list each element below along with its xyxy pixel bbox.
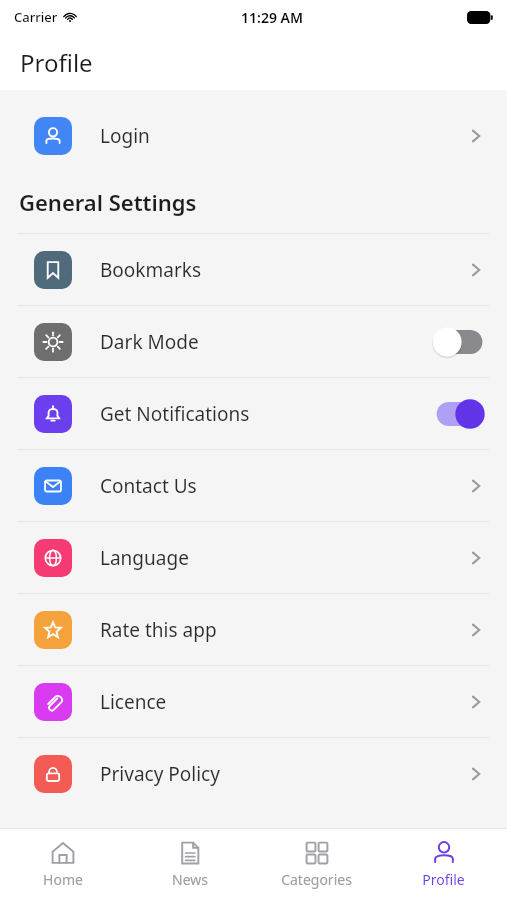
- button[interactable]: Home: [0, 829, 126, 900]
- staticText: Home: [43, 870, 83, 889]
- button[interactable]: Login: [0, 100, 507, 171]
- button[interactable]: Language: [0, 522, 507, 593]
- button[interactable]: Rate this app: [0, 594, 507, 665]
- staticText: Profile: [20, 46, 93, 79]
- staticText: 11:29 AM: [241, 8, 303, 27]
- button[interactable]: Privacy Policy: [0, 738, 507, 809]
- staticText: Contact Us: [100, 473, 197, 499]
- staticText: Licence: [100, 689, 167, 715]
- staticText: News: [172, 870, 208, 889]
- staticText: Categories: [281, 870, 352, 889]
- staticText: Rate this app: [100, 617, 217, 643]
- staticText: Privacy Policy: [100, 761, 220, 787]
- button[interactable]: Categories: [253, 829, 380, 900]
- staticText: General Settings: [19, 187, 197, 217]
- button[interactable]: Profile: [380, 829, 507, 900]
- button[interactable]: [433, 327, 485, 357]
- staticText: Carrier: [14, 8, 58, 26]
- button[interactable]: Get Notifications: [0, 378, 507, 449]
- staticText: Login: [100, 123, 150, 149]
- staticText: Dark Mode: [100, 329, 199, 355]
- staticText: Get Notifications: [100, 401, 250, 427]
- button[interactable]: Bookmarks: [0, 234, 507, 305]
- button[interactable]: [433, 399, 485, 429]
- button[interactable]: Licence: [0, 666, 507, 737]
- button[interactable]: News: [126, 829, 253, 900]
- staticText: Bookmarks: [100, 257, 202, 283]
- staticText: Language: [100, 545, 189, 571]
- button[interactable]: Contact Us: [0, 450, 507, 521]
- staticText: Profile: [422, 870, 465, 889]
- button[interactable]: Dark Mode: [0, 306, 507, 377]
